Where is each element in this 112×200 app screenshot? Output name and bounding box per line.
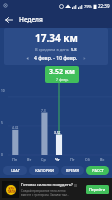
- staticText: 7.3: [41, 109, 46, 113]
- staticText: Создай прекрасное тело легко вместе с тр…: [21, 189, 69, 197]
- staticText: 3.52: [54, 131, 61, 135]
- staticText: 10: [1, 89, 5, 93]
- button[interactable]: Next week: [80, 54, 89, 63]
- staticText: Чт: [55, 157, 60, 162]
- staticText: КРН ТИЛИ: [7, 187, 16, 194]
- staticText: 4 февр. - 10 февр.: [34, 55, 78, 62]
- staticText: 7 февр.: [56, 77, 69, 82]
- button[interactable]: Вт: [22, 157, 36, 162]
- staticText: Сб: [85, 157, 90, 162]
- button[interactable]: Вс: [95, 157, 110, 162]
- staticText: 22:39: [98, 3, 110, 9]
- button[interactable]: ВРЕМЯ: [61, 166, 84, 175]
- button[interactable]: Сб: [80, 157, 95, 162]
- staticText: 5.8: [71, 47, 77, 52]
- staticText: 79%: [84, 4, 92, 9]
- button[interactable]: РАССТ: [86, 166, 109, 175]
- staticText: Ср: [41, 157, 46, 162]
- staticText: 4.32: [12, 126, 19, 130]
- staticText: В среднем в день: [35, 47, 69, 52]
- staticText: Неделя: [19, 15, 43, 24]
- staticText: РАССТ: [92, 168, 104, 173]
- button[interactable]: Пт: [65, 157, 80, 162]
- staticText: 3.52 км: [49, 67, 75, 77]
- button[interactable]: 3.52 км: [45, 66, 79, 83]
- staticText: Вс: [100, 157, 105, 162]
- button[interactable]: Чт: [50, 157, 65, 162]
- staticText: 5: [1, 121, 3, 125]
- button[interactable]: Back: [0, 11, 17, 28]
- button[interactable]: КАЛОРИИ: [29, 166, 59, 175]
- staticText: Перейти: [89, 187, 106, 192]
- staticText: Вт: [27, 157, 32, 162]
- button[interactable]: КРН ТИЛИ: [0, 178, 112, 200]
- button[interactable]: Перейти: [86, 185, 109, 194]
- button[interactable]: ШАГ: [3, 166, 27, 175]
- button[interactable]: Пн: [8, 157, 22, 162]
- button[interactable]: Previous week: [23, 54, 32, 63]
- staticText: ШАГ: [11, 168, 20, 173]
- staticText: Готовы сильно похудеть?: [21, 182, 73, 188]
- staticText: КАЛОРИИ: [35, 168, 54, 173]
- staticText: 0: [1, 153, 3, 157]
- staticText: Пн: [12, 157, 18, 162]
- staticText: Пт: [70, 157, 75, 162]
- staticText: ВРЕМЯ: [66, 168, 79, 173]
- staticText: 17.34 км: [35, 31, 78, 45]
- button[interactable]: Ср: [36, 157, 50, 162]
